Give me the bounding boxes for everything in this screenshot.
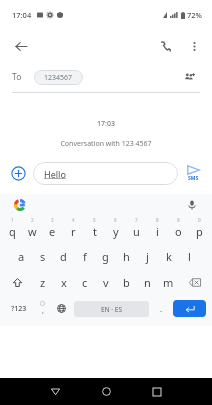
button[interactable]: x (53, 269, 74, 295)
staticText: h (123, 249, 130, 264)
staticText: c (82, 275, 88, 290)
button[interactable]: 7 (126, 216, 147, 243)
staticText: d (60, 249, 67, 264)
button[interactable]: d (53, 243, 74, 269)
button[interactable]: v (95, 269, 116, 295)
staticText: y (113, 224, 119, 239)
button[interactable]: 2 (22, 216, 42, 243)
staticText: 4 (72, 217, 75, 223)
button[interactable]: Hello (33, 162, 178, 185)
staticText: 1234567 (44, 73, 73, 83)
button[interactable]: 6 (105, 216, 126, 243)
staticText: m (163, 275, 174, 290)
button[interactable]: n (137, 269, 158, 295)
staticText: 9 (177, 217, 180, 223)
button[interactable]: 1 (2, 216, 22, 243)
staticText: o (175, 224, 182, 239)
button[interactable]: Back (8, 33, 34, 59)
staticText: Conversation with 123 4567 (0, 139, 212, 149)
button[interactable]: z (32, 269, 53, 295)
button[interactable]: 1234567 (34, 70, 83, 85)
button[interactable]: Enter (173, 300, 206, 317)
button[interactable]: l (179, 243, 200, 269)
staticText: 17:03 (0, 119, 212, 129)
staticText: r (71, 224, 76, 239)
button[interactable]: k (158, 243, 179, 269)
button[interactable]: m (158, 269, 179, 295)
staticText: SMS (188, 175, 199, 182)
staticText: 8 (156, 217, 159, 223)
button[interactable]: Back (39, 378, 71, 405)
staticText: 0 (198, 217, 201, 223)
button[interactable]: 3 (42, 216, 63, 243)
staticText: f (83, 249, 87, 264)
staticText: . (160, 303, 163, 314)
button[interactable]: Change language (52, 295, 71, 322)
button[interactable]: EN · ES (74, 301, 149, 317)
button[interactable]: . (152, 295, 171, 322)
button[interactable]: Recent apps (141, 378, 173, 405)
button[interactable]: Send SMS (181, 161, 205, 185)
staticText: To (12, 71, 22, 83)
button[interactable]: j (137, 243, 158, 269)
staticText: 7 (135, 217, 138, 223)
button[interactable]: g (95, 243, 116, 269)
button[interactable]: Attach (7, 162, 29, 184)
staticText: k (166, 249, 172, 264)
staticText: x (61, 275, 67, 290)
staticText: 5 (93, 217, 96, 223)
staticText: , (42, 306, 44, 316)
button[interactable]: ?123 (4, 295, 33, 322)
button[interactable]: a (11, 243, 32, 269)
staticText: ?123 (11, 304, 27, 314)
staticText: e (49, 224, 56, 239)
staticText: g (102, 249, 109, 264)
staticText: t (93, 224, 97, 239)
button[interactable]: Home (90, 378, 122, 405)
button[interactable]: Voice input (184, 197, 200, 213)
button[interactable]: 9 (168, 216, 189, 243)
button[interactable]: c (74, 269, 95, 295)
button[interactable]: s (32, 243, 53, 269)
staticText: 1 (11, 217, 14, 223)
button[interactable]: Backspace (179, 269, 210, 295)
button[interactable]: 8 (147, 216, 168, 243)
staticText: b (123, 275, 130, 290)
button[interactable]: 5 (84, 216, 105, 243)
staticText: l (188, 249, 191, 264)
staticText: Hello (44, 168, 66, 180)
button[interactable]: 0 (189, 216, 210, 243)
staticText: 72% (187, 10, 202, 20)
button[interactable]: Google search (12, 197, 28, 213)
button[interactable]: Call (154, 34, 178, 58)
staticText: 17:04 (12, 10, 32, 20)
button[interactable]: More options (182, 34, 206, 58)
button[interactable]: 4 (63, 216, 84, 243)
button[interactable]: Emoji and comma (33, 295, 52, 322)
button[interactable]: b (116, 269, 137, 295)
staticText: p (196, 224, 203, 239)
staticText: q (9, 224, 16, 239)
staticText: u (133, 224, 140, 239)
staticText: 6 (114, 217, 117, 223)
staticText: w (28, 224, 37, 239)
staticText: s (40, 249, 46, 264)
button[interactable]: Shift (2, 269, 32, 295)
staticText: a (18, 249, 25, 264)
button[interactable]: h (116, 243, 137, 269)
staticText: EN · ES (101, 305, 123, 314)
staticText: j (146, 249, 149, 264)
button[interactable]: f (74, 243, 95, 269)
button[interactable]: Add recipients (178, 66, 200, 88)
staticText: n (144, 275, 151, 290)
staticText: 3 (51, 217, 54, 223)
staticText: v (103, 275, 109, 290)
staticText: z (40, 275, 46, 290)
staticText: 2 (31, 217, 34, 223)
staticText: i (156, 224, 159, 239)
